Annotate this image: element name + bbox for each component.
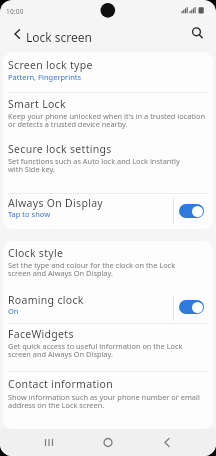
staticText: Screen lock type	[8, 58, 93, 72]
button[interactable]	[3, 52, 213, 92]
button[interactable]	[3, 287, 169, 322]
button[interactable]	[179, 300, 204, 314]
button[interactable]	[3, 139, 213, 192]
staticText: Pattern, Fingerprints	[8, 72, 82, 82]
staticText: 10:00	[6, 7, 24, 16]
staticText: Tap to show	[8, 209, 51, 219]
staticText: address on the Lock screen.	[8, 400, 105, 410]
button[interactable]	[34, 429, 64, 456]
button[interactable]	[3, 241, 213, 286]
staticText: On	[8, 306, 19, 316]
staticText: Set functions such as Auto lock and Lock…	[8, 156, 180, 166]
staticText: screen and Always On Display.	[8, 349, 113, 359]
staticText: Always On Display	[8, 196, 104, 210]
staticText: Set the type and colour for the clock on…	[8, 260, 176, 270]
staticText: Smart Lock	[8, 97, 66, 111]
staticText: FaceWidgets	[8, 327, 74, 341]
staticText: Clock style	[8, 246, 64, 260]
button[interactable]	[152, 429, 182, 456]
staticText: Roaming clock	[8, 293, 84, 307]
staticText: or detects a trusted device nearby.	[8, 119, 128, 129]
staticText: screen and Always On Display.	[8, 268, 113, 278]
staticText: with Side key.	[8, 164, 55, 174]
staticText: Contact information	[8, 377, 113, 391]
button[interactable]	[3, 193, 169, 229]
staticText: Keep your phone unlocked when it's in a …	[8, 111, 205, 121]
button[interactable]	[3, 93, 213, 139]
staticText: Show information such as your phone numb…	[8, 392, 200, 402]
button[interactable]	[3, 372, 213, 429]
button[interactable]	[93, 429, 123, 456]
staticText: Get quick access to useful information o…	[8, 341, 183, 351]
button[interactable]	[179, 204, 204, 218]
button[interactable]	[8, 24, 30, 46]
button[interactable]	[186, 22, 210, 46]
button[interactable]	[3, 323, 213, 371]
staticText: Secure lock settings	[8, 142, 112, 156]
staticText: Lock screen	[26, 29, 93, 45]
